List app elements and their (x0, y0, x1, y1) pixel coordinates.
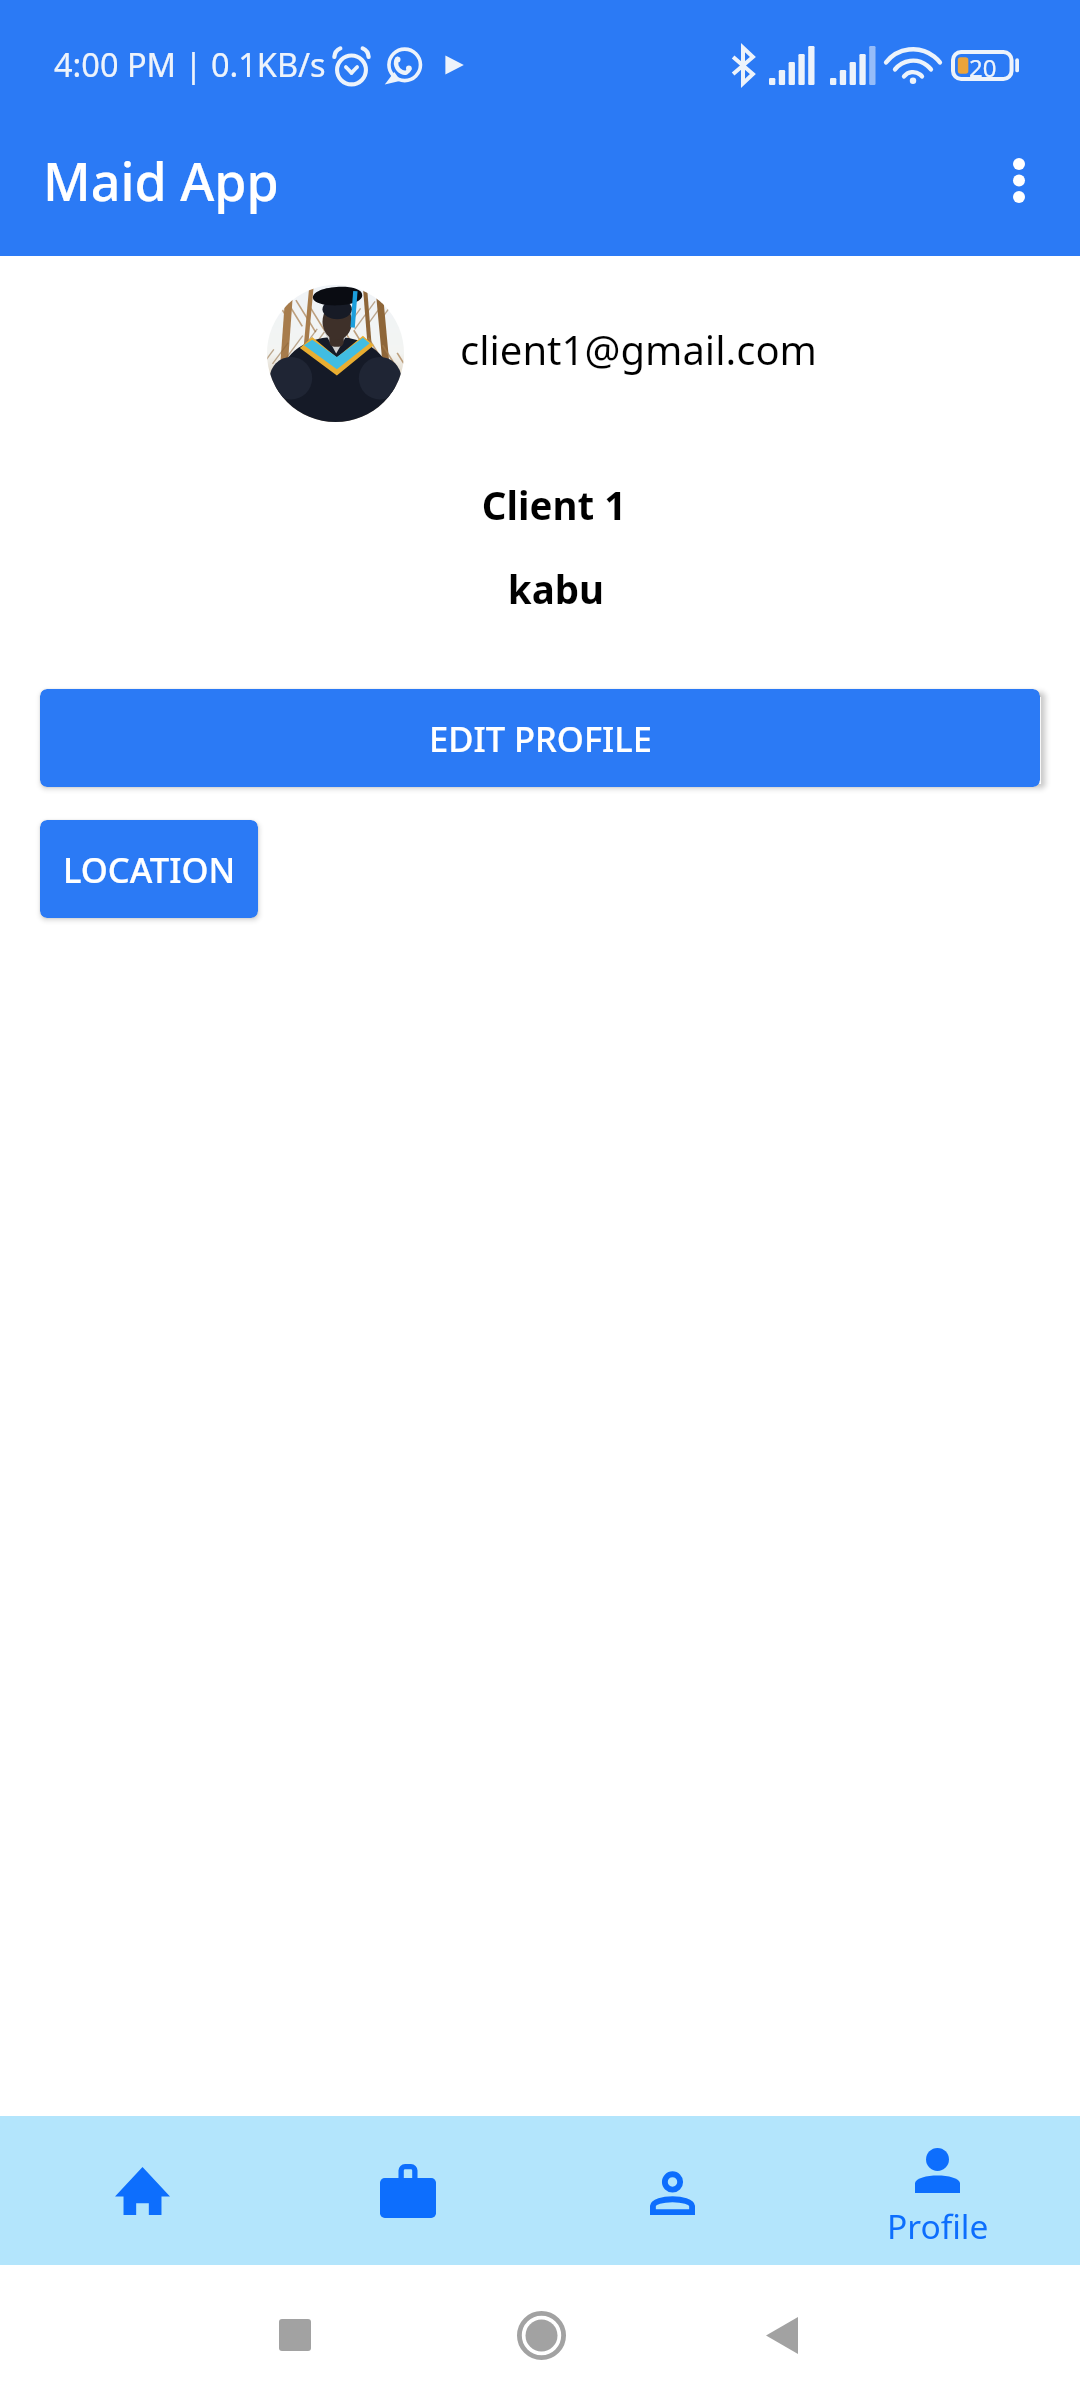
staticText: 20 (969, 51, 997, 82)
staticText: kabu (16, 563, 1080, 615)
staticText: Maid App (43, 145, 279, 216)
button[interactable]: Jobs (275, 2116, 540, 2265)
staticText: client1@gmail.com (460, 322, 817, 376)
button[interactable]: Profile (805, 2116, 1070, 2265)
button[interactable]: More options (971, 132, 1067, 228)
button[interactable]: Home (10, 2116, 275, 2265)
staticText: LOCATION (63, 846, 236, 893)
button[interactable]: LOCATION (40, 820, 258, 918)
staticText: Profile (887, 2203, 989, 2249)
button[interactable]: EDIT PROFILE (40, 689, 1040, 787)
button[interactable]: Back (734, 2287, 830, 2383)
staticText: 4:00 PM | 0.1KB/s (54, 42, 326, 86)
button[interactable]: Home (493, 2287, 589, 2383)
button[interactable]: Maids (540, 2116, 805, 2265)
button[interactable]: Recents (247, 2287, 343, 2383)
staticText: Client 1 (14, 479, 1080, 531)
staticText: EDIT PROFILE (429, 715, 652, 762)
